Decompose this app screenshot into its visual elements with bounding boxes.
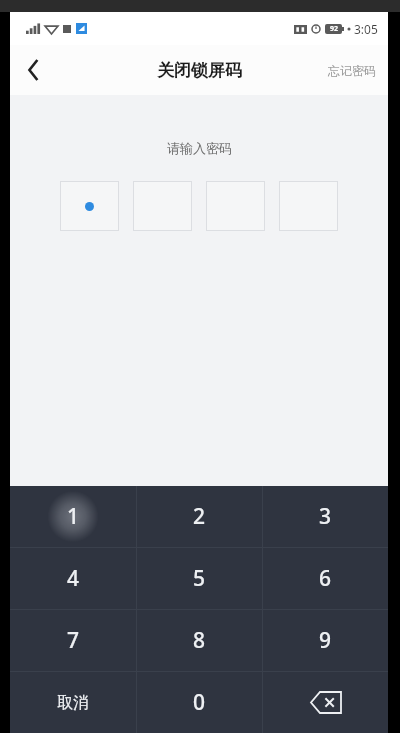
staticText: 1 [67, 502, 80, 531]
staticText: 5 [193, 564, 206, 593]
staticText: 2 [193, 502, 206, 531]
button[interactable]: 4 [10, 548, 136, 609]
button[interactable]: 5 [137, 548, 262, 609]
staticText: 6 [319, 564, 332, 593]
button[interactable]: 7 [10, 610, 136, 671]
staticText: 8 [193, 626, 206, 655]
staticText: 3 [319, 502, 332, 531]
button[interactable]: 9 [263, 610, 388, 671]
button[interactable]: 8 [137, 610, 262, 671]
button[interactable]: Delete [263, 672, 388, 733]
button[interactable]: Back [10, 46, 58, 94]
button[interactable]: 忘记密码 [316, 51, 388, 90]
staticText: 关闭锁屏码 [157, 60, 242, 81]
staticText: 4 [67, 564, 80, 593]
staticText: 7 [67, 626, 80, 655]
button[interactable]: 2 [137, 486, 262, 547]
staticText: 92 [330, 24, 339, 34]
button[interactable]: 1 [10, 486, 136, 547]
staticText: 9 [319, 626, 332, 655]
staticText: 3:05 [354, 21, 378, 37]
staticText: 忘记密码 [328, 63, 376, 78]
button[interactable]: 6 [263, 548, 388, 609]
button[interactable]: 0 [137, 672, 262, 733]
button[interactable]: 取消 [10, 672, 136, 733]
staticText: 请输入密码 [167, 140, 232, 156]
staticText: 取消 [57, 693, 89, 713]
staticText: 0 [193, 688, 206, 717]
button[interactable]: 3 [263, 486, 388, 547]
